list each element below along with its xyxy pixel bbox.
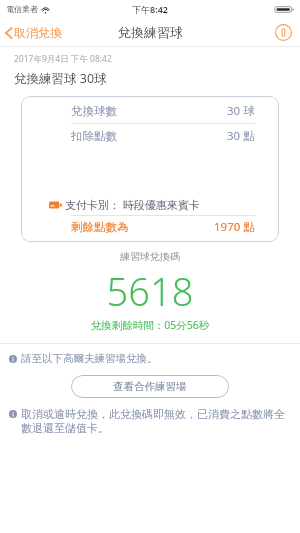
staticText: 兌換練習球 30球 [14,70,107,87]
button[interactable]: 取消兌換 [0,21,68,44]
staticText: 5618 [0,265,300,317]
staticText: 剩餘點數為 [71,220,129,234]
staticText: 兌換球數 [71,104,117,118]
button[interactable]: 資訊 [272,21,294,43]
staticText: 下午8:42 [132,3,168,15]
button[interactable]: 查看合作練習場 [71,375,229,398]
staticText: 1970 點 [214,219,255,235]
staticText: 扣除點數 [71,129,117,143]
staticText: 取消兌換 [14,25,62,40]
staticText: 30 點 [227,128,255,144]
staticText: 兌換剩餘時間：05分56秒 [0,318,300,332]
staticText: 電信業者 [6,4,38,14]
staticText: 練習球兌換碼 [0,250,300,263]
staticText: 支付卡別： 時段優惠來賓卡 [65,197,200,212]
staticText: 2017年9月4日 下午 08:42 [14,53,112,65]
staticText: 取消或逾時兌換，此兌換碼即無效，已消費之點數將全數退還至儲值卡。 [21,407,286,435]
staticText: 兌換練習球 [118,24,183,40]
staticText: 30 球 [227,103,255,119]
staticText: 查看合作練習場 [113,380,187,393]
staticText: 請至以下高爾夫練習場兌換。 [21,352,158,365]
